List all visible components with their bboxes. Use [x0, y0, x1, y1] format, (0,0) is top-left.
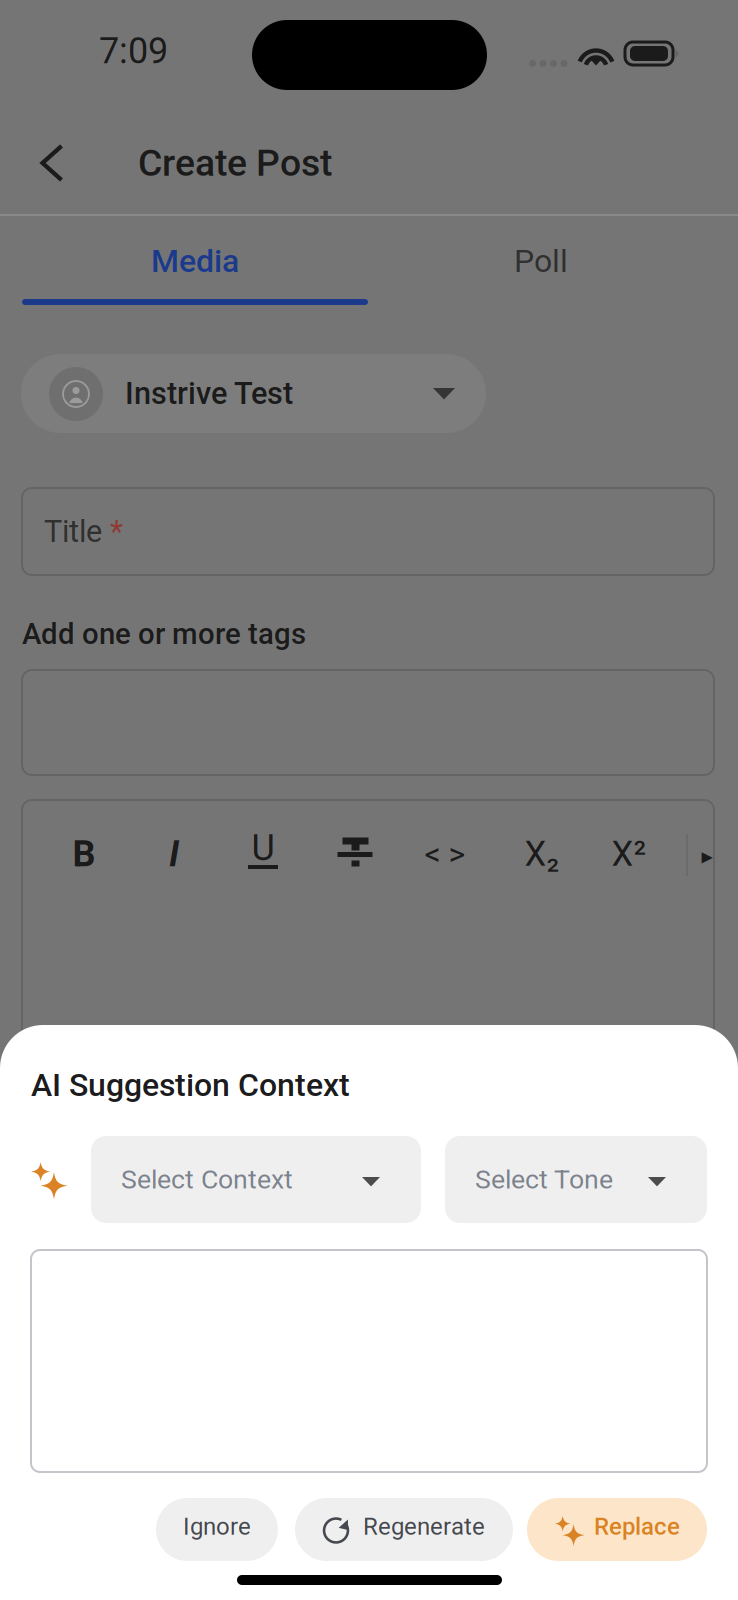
staticText: Regenerate — [363, 1512, 485, 1540]
staticText: AI Suggestion Context — [31, 1066, 350, 1104]
staticText: I — [169, 833, 179, 875]
staticText: Select Context — [121, 1164, 293, 1195]
staticText: 7:09 — [99, 30, 168, 72]
staticText: U — [251, 827, 274, 869]
staticText: Replace — [594, 1512, 680, 1540]
staticText: B — [72, 833, 95, 875]
button[interactable]: Select Tone — [445, 1136, 707, 1223]
staticText: Add one or more tags — [22, 617, 306, 651]
button[interactable]: Ignore — [156, 1498, 278, 1561]
staticText: Ignore — [183, 1512, 251, 1540]
button[interactable]: Instrive Test — [0, 0, 465, 79]
staticText: Title — [44, 513, 102, 549]
staticText: Media — [151, 242, 239, 280]
staticText: Select Tone — [475, 1164, 613, 1195]
button[interactable]: Replace — [527, 1498, 707, 1561]
button[interactable]: Regenerate — [295, 1498, 513, 1561]
staticText: X² — [611, 834, 646, 874]
staticText: Create Post — [138, 141, 332, 185]
staticText: X₂ — [524, 834, 559, 874]
staticText: ▸ — [701, 843, 712, 869]
staticText: < > — [424, 835, 465, 873]
staticText: * — [110, 513, 123, 549]
button[interactable]: Poll — [0, 0, 346, 58]
button[interactable]: Select Context — [91, 1136, 421, 1223]
button[interactable]: Media — [0, 0, 346, 58]
staticText: Poll — [514, 242, 568, 280]
staticText: Instrive Test — [125, 375, 293, 411]
